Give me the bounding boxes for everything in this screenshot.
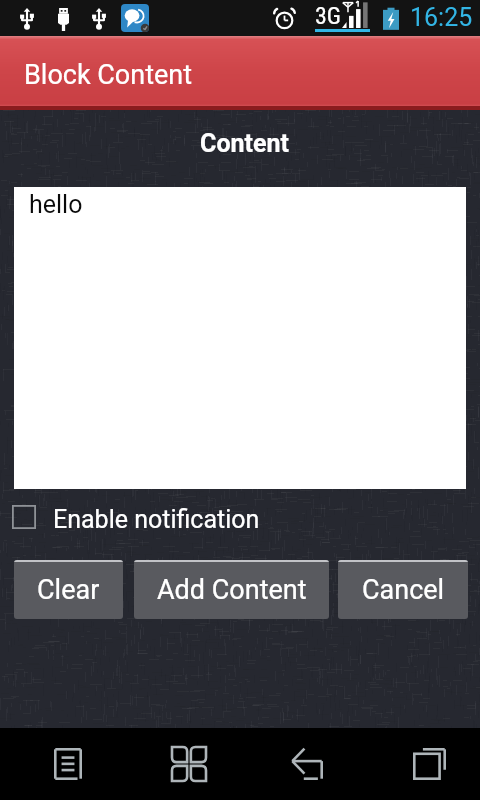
staticText: Clear (37, 574, 100, 606)
staticText: Block Content (24, 59, 193, 91)
button[interactable]: Clear (14, 560, 123, 619)
button[interactable]: Enable notification (0, 495, 480, 539)
staticText: 16:25 (410, 3, 473, 32)
staticText: Cancel (362, 574, 445, 606)
staticText: Enable notification (53, 505, 260, 534)
staticText: Add Content (157, 574, 307, 606)
staticText: 3G (315, 2, 342, 30)
button[interactable]: Cancel (338, 560, 468, 619)
button[interactable]: Add Content (134, 560, 329, 619)
staticText: hello (29, 190, 83, 219)
button[interactable]: hello (14, 187, 466, 489)
button[interactable]: Back (259, 728, 355, 800)
button[interactable]: Menu (20, 728, 116, 800)
staticText: Content (200, 129, 289, 158)
button[interactable]: Recent apps (381, 728, 477, 800)
button[interactable]: Home (141, 728, 237, 800)
